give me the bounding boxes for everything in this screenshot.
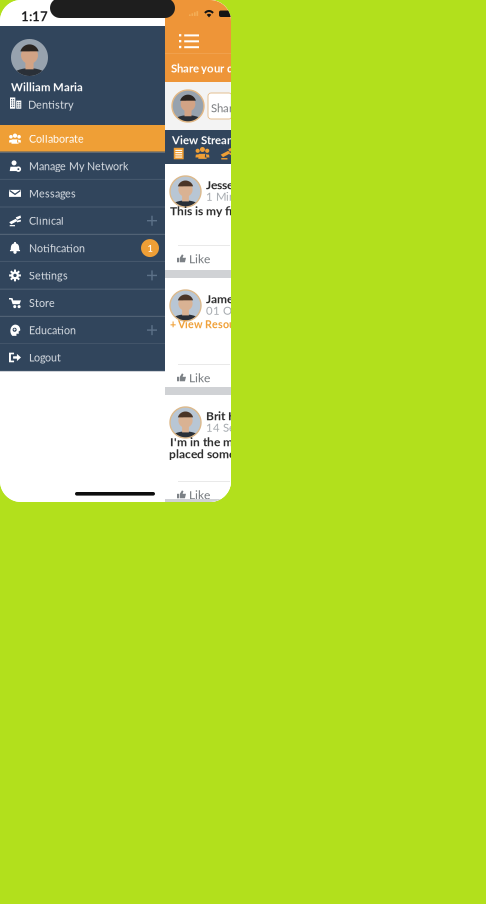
button[interactable]: Settings — [0, 262, 165, 289]
staticText: 1 — [147, 242, 152, 254]
staticText: Logout — [29, 351, 61, 364]
staticText: Share your question — [171, 61, 270, 75]
staticText: Share — [211, 101, 239, 115]
staticText: 1:17 — [21, 8, 48, 24]
button[interactable]: Education — [0, 316, 165, 344]
staticText: Collaborate — [29, 132, 84, 145]
staticText: View Stream — [172, 133, 236, 147]
staticText: Clinical — [29, 214, 64, 227]
button[interactable]: Clinical — [0, 207, 165, 234]
staticText: Brit H — [206, 408, 237, 423]
staticText: Like — [189, 251, 210, 266]
staticText: I'm in the middle — [170, 434, 259, 449]
staticText: + View Resource — [170, 318, 250, 330]
button[interactable]: Messages — [0, 180, 165, 207]
staticText: Jesse W — [206, 177, 249, 192]
staticText: Notification — [29, 242, 85, 254]
staticText: Manage My Network — [29, 160, 128, 172]
staticText: Store — [29, 296, 55, 309]
staticText: Settings — [29, 269, 68, 282]
staticText: This is my first — [170, 203, 245, 218]
staticText: 01 Oct — [206, 303, 241, 317]
button[interactable]: Manage My Network — [0, 152, 165, 180]
staticText: Messages — [29, 187, 76, 200]
staticText: Education — [29, 324, 76, 336]
staticText: 14 Sep — [206, 420, 241, 434]
staticText: Like — [189, 487, 210, 502]
staticText: Like — [189, 370, 210, 385]
staticText: Dentistry — [28, 98, 74, 111]
staticText: James — [206, 291, 238, 306]
staticText: placed some stuff — [169, 446, 262, 461]
button[interactable]: Menu — [174, 28, 204, 54]
staticText: William Maria — [11, 80, 83, 94]
button[interactable]: Store — [0, 289, 165, 316]
button[interactable]: Collaborate — [0, 125, 165, 152]
staticText: 1 Mins — [206, 189, 240, 203]
button[interactable]: Notification — [0, 234, 165, 262]
button[interactable]: Logout — [0, 344, 165, 371]
